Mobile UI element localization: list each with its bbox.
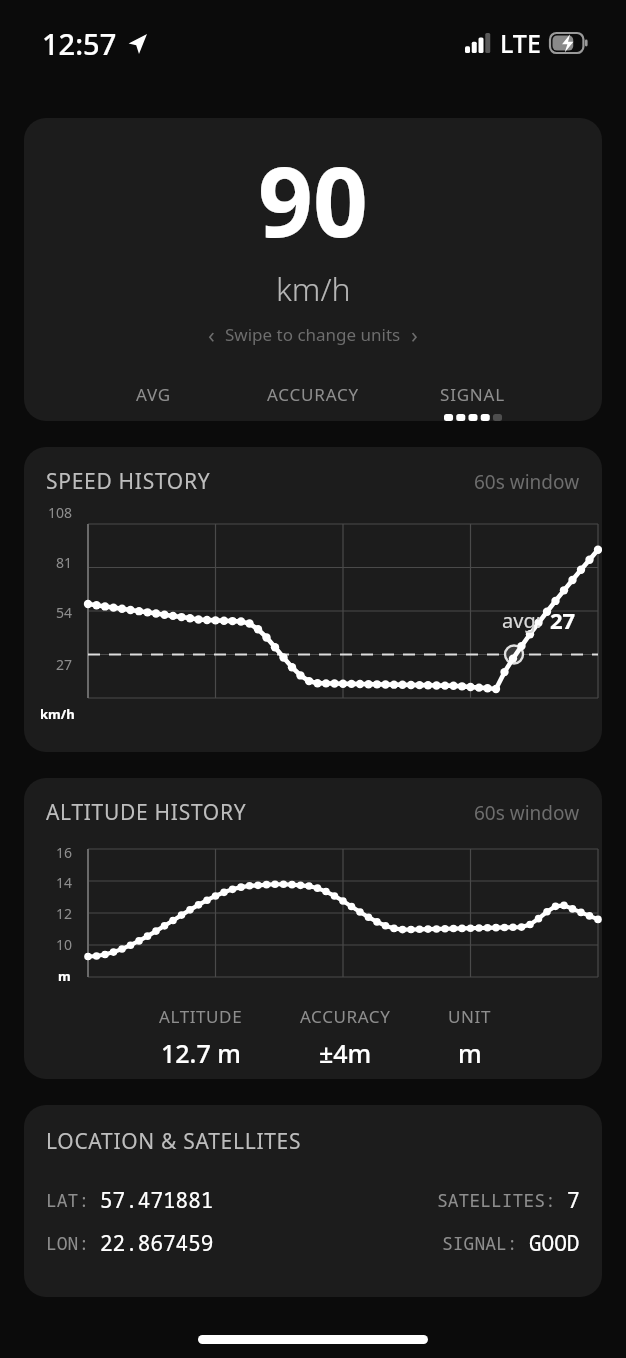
- button[interactable]: LOCATION & SATELLITES: [24, 1105, 602, 1297]
- staticText: 14: [56, 873, 73, 892]
- staticText: 16: [56, 843, 73, 862]
- staticText: ACCURACY: [300, 1005, 391, 1028]
- staticText: 54: [56, 603, 73, 622]
- staticText: 7: [567, 1186, 580, 1215]
- button[interactable]: SPEED HISTORY: [24, 447, 602, 752]
- staticText: ALTITUDE HISTORY: [46, 798, 247, 827]
- staticText: 57.471881: [100, 1186, 214, 1215]
- staticText: LTE: [500, 26, 541, 60]
- staticText: SPEED HISTORY: [46, 467, 211, 496]
- staticText: AVG: [136, 383, 171, 406]
- staticText: 108: [48, 503, 73, 522]
- other: Home indicator: [198, 1335, 428, 1344]
- staticText: LAT:: [46, 1188, 100, 1213]
- staticText: LON:: [46, 1231, 100, 1256]
- staticText: m: [458, 1036, 482, 1070]
- staticText: SATELLITES:: [437, 1188, 567, 1213]
- staticText: 81: [56, 553, 73, 572]
- button[interactable]: ALTITUDE HISTORY: [24, 778, 602, 1079]
- staticText: SIGNAL:: [442, 1231, 529, 1256]
- staticText: ›: [411, 319, 418, 349]
- staticText: 27: [550, 605, 576, 635]
- staticText: 10: [56, 935, 73, 954]
- staticText: 12:57: [42, 24, 117, 63]
- staticText: 12: [56, 904, 73, 923]
- staticText: 22.867459: [100, 1229, 214, 1258]
- staticText: SIGNAL: [440, 383, 505, 406]
- staticText: km/h: [40, 705, 75, 723]
- button[interactable]: 90: [24, 118, 602, 421]
- staticText: ‹: [208, 319, 215, 349]
- staticText: 60s window: [474, 800, 580, 826]
- staticText: 60s window: [474, 469, 580, 495]
- staticText: 27: [56, 655, 73, 674]
- staticText: 12.7 m: [161, 1036, 241, 1070]
- staticText: LOCATION & SATELLITES: [46, 1127, 302, 1156]
- staticText: ACCURACY: [267, 383, 359, 406]
- staticText: km/h: [276, 267, 351, 311]
- staticText: GOOD: [529, 1229, 580, 1258]
- staticText: Swipe to change units: [225, 323, 401, 346]
- staticText: m: [58, 967, 71, 983]
- staticText: ALTITUDE: [159, 1005, 243, 1028]
- staticText: avg:: [502, 607, 542, 634]
- staticText: UNIT: [448, 1005, 491, 1028]
- staticText: 90: [258, 134, 368, 265]
- staticText: ±4m: [319, 1036, 372, 1070]
